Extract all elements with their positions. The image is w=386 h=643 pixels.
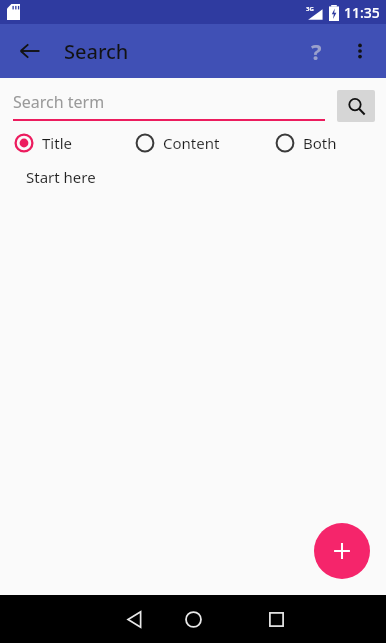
button[interactable]: Add — [314, 523, 370, 579]
button[interactable]: Recent apps — [252, 595, 300, 643]
staticText: 11:35 — [344, 3, 380, 22]
button[interactable]: More options — [338, 29, 382, 73]
button[interactable]: Search term — [13, 91, 325, 121]
staticText: ? — [311, 36, 322, 66]
button[interactable]: Content — [135, 133, 275, 153]
staticText: 3G — [306, 5, 314, 13]
staticText: Search term — [13, 91, 105, 113]
staticText: Start here — [26, 167, 96, 187]
staticText: Title — [42, 133, 72, 153]
button[interactable]: Help — [294, 29, 338, 73]
button[interactable]: Title — [14, 133, 135, 153]
staticText: Both — [303, 133, 337, 153]
staticText: Content — [163, 133, 220, 153]
staticText: Search — [64, 38, 129, 65]
button[interactable]: Both — [275, 133, 386, 153]
button[interactable]: Back — [110, 595, 158, 643]
button[interactable]: Search — [337, 90, 375, 122]
button[interactable]: Back — [10, 31, 50, 71]
button[interactable]: Home — [169, 595, 217, 643]
